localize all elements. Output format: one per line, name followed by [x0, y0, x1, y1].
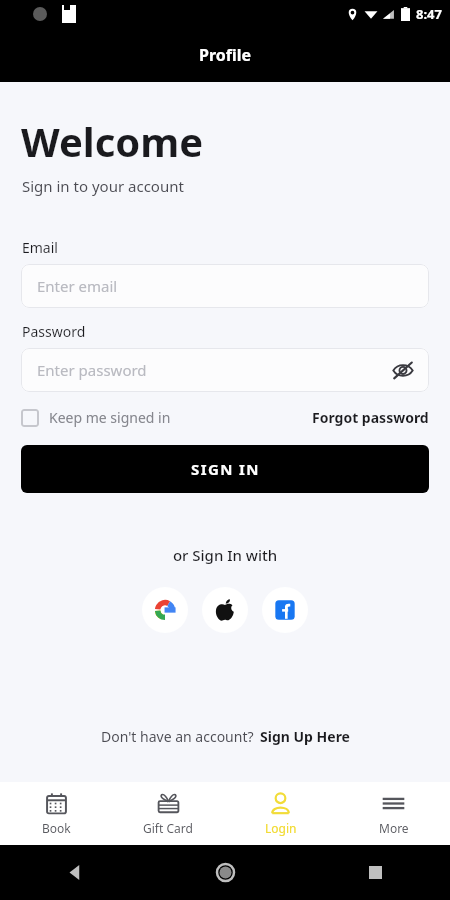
- button[interactable]: Sign in with Apple: [202, 587, 248, 633]
- button[interactable]: Login: [224, 782, 337, 845]
- button[interactable]: Enter password: [21, 348, 429, 392]
- staticText: 8:47: [416, 5, 442, 23]
- button[interactable]: Enter email: [21, 264, 429, 308]
- button[interactable]: Gift Card: [112, 782, 224, 845]
- button[interactable]: More: [337, 782, 450, 845]
- staticText: More: [379, 820, 409, 836]
- staticText: Book: [42, 820, 71, 836]
- staticText: Email: [22, 238, 58, 257]
- staticText: Profile: [199, 44, 252, 66]
- staticText: Enter email: [37, 276, 118, 296]
- staticText: Don't have an account?: [101, 727, 254, 746]
- staticText: Welcome: [21, 114, 204, 168]
- staticText: Password: [22, 322, 86, 341]
- staticText: Sign in to your account: [22, 176, 184, 196]
- staticText: Login: [265, 820, 297, 836]
- button[interactable]: SIGN IN: [21, 445, 429, 493]
- button[interactable]: Show password: [389, 356, 417, 384]
- button[interactable]: Sign Up Here: [260, 727, 350, 746]
- button[interactable]: Book: [0, 782, 112, 845]
- staticText: or Sign In with: [0, 545, 450, 565]
- staticText: Sign Up Here: [260, 727, 350, 746]
- button[interactable]: Sign in with Facebook: [262, 587, 308, 633]
- button[interactable]: Keep me signed in: [21, 404, 171, 431]
- button[interactable]: Sign in with Google: [142, 587, 188, 633]
- staticText: Keep me signed in: [49, 408, 171, 427]
- staticText: Gift Card: [143, 820, 193, 836]
- button[interactable]: Forgot password: [312, 404, 429, 431]
- staticText: SIGN IN: [191, 459, 260, 479]
- staticText: Forgot password: [312, 408, 429, 427]
- staticText: Enter password: [37, 360, 147, 380]
